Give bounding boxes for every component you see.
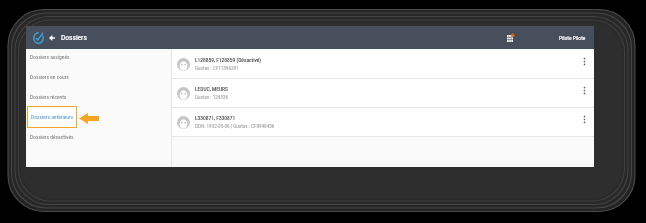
staticText: Dossiers désactivés — [30, 134, 74, 140]
staticText: Dossiers en cours — [30, 74, 69, 80]
staticText: Gustav : CF11396281 — [195, 65, 239, 71]
button[interactable]: L128859, F128859 (Désactivé) — [172, 50, 594, 78]
button[interactable]: Dossiers antérieurs — [27, 106, 77, 128]
button[interactable]: Dossiers désactivés — [26, 127, 171, 147]
button[interactable]: Dossiers récents — [26, 87, 171, 107]
button[interactable]: More options — [576, 47, 593, 75]
staticText: Pilote Pilote — [559, 35, 586, 41]
staticText: Dossiers — [61, 33, 87, 42]
staticText: LEDUC, MEURS — [195, 86, 228, 92]
button[interactable]: More options — [576, 105, 593, 133]
staticText: Dossiers récents — [30, 94, 67, 100]
staticText: L128859, F128859 (Désactivé) — [195, 57, 262, 63]
staticText: Dossiers antérieurs — [31, 114, 74, 120]
button[interactable]: Applications — [503, 31, 517, 45]
button[interactable]: Back — [47, 33, 57, 43]
button[interactable]: More options — [576, 76, 593, 104]
button[interactable]: Dossiers en cours — [26, 67, 171, 87]
button[interactable]: L330871, F330871 — [172, 108, 594, 136]
staticText: L330871, F330871 — [195, 115, 236, 121]
button[interactable]: Dossiers assignés — [26, 47, 171, 67]
staticText: Gustav : 124336 — [195, 94, 229, 100]
button[interactable]: LEDUC, MEURS — [172, 79, 594, 107]
button[interactable]: Home — [32, 32, 44, 44]
staticText: Dossiers assignés — [30, 54, 70, 60]
staticText: DDN: 1932-05-06 | Gustav : CF8940456 — [195, 123, 275, 129]
